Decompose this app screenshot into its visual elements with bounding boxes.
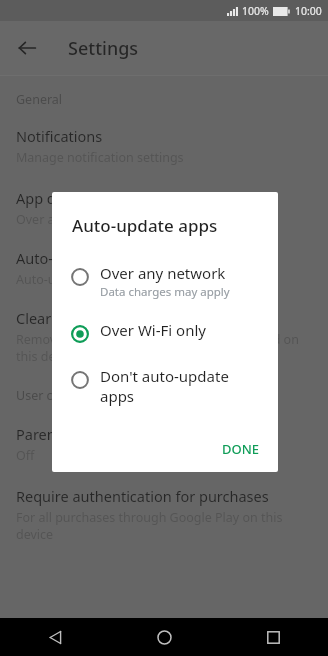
button[interactable]: Parental controls — [0, 424, 328, 464]
staticText: Require authentication for purchases — [16, 486, 269, 506]
staticText: Over Wi-Fi only — [100, 320, 206, 340]
staticText: Off — [16, 447, 35, 464]
staticText: Parental controls — [16, 424, 132, 444]
staticText: Auto-update apps — [16, 248, 138, 268]
button[interactable]: Auto-update apps — [0, 248, 328, 288]
button[interactable]: Back — [10, 31, 44, 65]
staticText: Don't auto-update apps — [100, 366, 266, 406]
button[interactable]: App download preference — [0, 188, 328, 228]
button[interactable]: Back — [0, 618, 110, 656]
staticText: 100% — [242, 4, 269, 18]
staticText: Auto-update apps — [72, 214, 218, 237]
button[interactable]: Notifications — [0, 126, 328, 166]
button[interactable]: Clear local search history — [0, 308, 328, 365]
button[interactable]: DONE — [212, 432, 270, 466]
staticText: Auto-update apps over Wi-Fi only — [16, 271, 211, 288]
button[interactable]: Don't auto-update apps — [52, 362, 278, 414]
staticText: Over any network — [100, 263, 226, 283]
button[interactable]: Over Wi-Fi only — [52, 316, 278, 352]
staticText: Clear local search history — [16, 308, 186, 328]
staticText: Over any network — [16, 211, 121, 228]
staticText: General — [16, 91, 63, 108]
staticText: DONE — [222, 440, 260, 458]
button[interactable]: Over any network — [52, 259, 278, 308]
staticText: Data charges may apply — [100, 284, 230, 300]
staticText: App download preference — [16, 188, 192, 208]
button[interactable]: Require authentication for purchases — [0, 486, 328, 543]
staticText: For all purchases through Google Play on… — [16, 509, 312, 543]
staticText: Manage notification settings — [16, 149, 184, 166]
staticText: Remove all the searches you have perform… — [16, 331, 312, 365]
staticText: Settings — [68, 36, 139, 61]
staticText: User controls — [16, 387, 95, 404]
staticText: 10:00 — [295, 4, 322, 18]
button[interactable]: Recents — [219, 618, 328, 656]
button[interactable]: Home — [110, 618, 219, 656]
staticText: Notifications — [16, 126, 103, 146]
